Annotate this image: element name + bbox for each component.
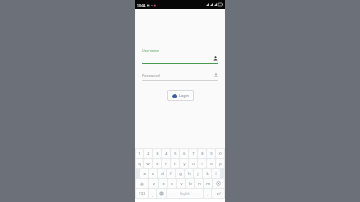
button[interactable]: m bbox=[204, 179, 212, 188]
button[interactable]: u bbox=[189, 159, 197, 168]
button[interactable]: v bbox=[177, 179, 185, 188]
staticText: g bbox=[179, 171, 182, 176]
button[interactable]: Username bbox=[142, 48, 218, 64]
button[interactable]: Backspace bbox=[213, 179, 224, 188]
staticText: h bbox=[188, 171, 191, 176]
staticText: y bbox=[183, 161, 186, 166]
staticText: 9 bbox=[210, 151, 213, 156]
staticText: ?123 bbox=[139, 192, 146, 196]
staticText: f bbox=[170, 171, 172, 176]
staticText: r bbox=[165, 161, 167, 166]
button[interactable]: n bbox=[195, 179, 203, 188]
button[interactable]: , bbox=[149, 189, 156, 198]
button[interactable]: ?123 bbox=[136, 189, 148, 198]
button[interactable]: q bbox=[136, 159, 143, 168]
staticText: z bbox=[153, 181, 155, 186]
staticText: Password bbox=[142, 73, 160, 78]
button[interactable]: h bbox=[185, 169, 193, 178]
staticText: 5 bbox=[174, 151, 177, 156]
button[interactable]: 2 bbox=[144, 149, 152, 158]
button[interactable]: o bbox=[207, 159, 215, 168]
button[interactable]: 7 bbox=[189, 149, 197, 158]
staticText: u bbox=[192, 161, 195, 166]
button[interactable]: b bbox=[186, 179, 194, 188]
button[interactable]: j bbox=[194, 169, 202, 178]
button[interactable]: Change keyboard language bbox=[157, 189, 166, 198]
button[interactable]: Login bbox=[167, 90, 194, 101]
staticText: c bbox=[171, 181, 173, 186]
staticText: j bbox=[197, 171, 199, 176]
button[interactable]: t bbox=[171, 159, 179, 168]
staticText: w bbox=[146, 161, 150, 166]
staticText: a bbox=[143, 171, 146, 176]
staticText: b bbox=[189, 181, 192, 186]
button[interactable]: c bbox=[168, 179, 176, 188]
staticText: 2 bbox=[147, 151, 150, 156]
button[interactable]: l bbox=[212, 169, 220, 178]
button[interactable]: p bbox=[216, 159, 224, 168]
staticText: . bbox=[207, 192, 208, 196]
button[interactable]: Enter bbox=[212, 189, 224, 198]
button[interactable]: 9 bbox=[207, 149, 215, 158]
staticText: Login bbox=[179, 93, 189, 98]
button[interactable]: 3 bbox=[153, 149, 161, 158]
button[interactable]: f bbox=[167, 169, 175, 178]
button[interactable]: y bbox=[180, 159, 188, 168]
button[interactable]: z bbox=[149, 179, 158, 188]
staticText: p bbox=[219, 161, 222, 166]
staticText: l bbox=[215, 171, 217, 176]
staticText: d bbox=[161, 171, 164, 176]
staticText: m bbox=[206, 181, 210, 186]
staticText: o bbox=[210, 161, 213, 166]
staticText: s bbox=[152, 171, 154, 176]
staticText: 8 bbox=[201, 151, 204, 156]
staticText: v bbox=[180, 181, 183, 186]
button[interactable]: 4 bbox=[162, 149, 170, 158]
staticText: English bbox=[180, 192, 190, 196]
button[interactable]: r bbox=[162, 159, 170, 168]
button[interactable]: 5 bbox=[171, 149, 179, 158]
staticText: q bbox=[138, 161, 141, 166]
button[interactable]: k bbox=[203, 169, 211, 178]
button[interactable]: 0 bbox=[216, 149, 224, 158]
staticText: 4 bbox=[165, 151, 168, 156]
button[interactable]: d bbox=[158, 169, 166, 178]
staticText: e bbox=[156, 161, 159, 166]
button[interactable]: g bbox=[176, 169, 184, 178]
staticText: 3 bbox=[156, 151, 159, 156]
staticText: 6 bbox=[183, 151, 186, 156]
button[interactable]: Password bbox=[142, 70, 218, 81]
staticText: 1 bbox=[138, 151, 141, 156]
staticText: i bbox=[201, 161, 203, 166]
button[interactable]: s bbox=[149, 169, 157, 178]
button[interactable]: i bbox=[198, 159, 206, 168]
button[interactable]: e bbox=[153, 159, 161, 168]
staticText: n bbox=[198, 181, 201, 186]
staticText: t bbox=[174, 161, 176, 166]
button[interactable]: 6 bbox=[180, 149, 188, 158]
button[interactable]: a bbox=[140, 169, 148, 178]
button[interactable]: Shift bbox=[136, 179, 148, 188]
button[interactable]: w bbox=[144, 159, 152, 168]
staticText: x bbox=[162, 181, 165, 186]
button[interactable]: English bbox=[167, 189, 203, 198]
button[interactable]: 1 bbox=[136, 149, 143, 158]
button[interactable]: x bbox=[159, 179, 167, 188]
staticText: 10:04 bbox=[137, 3, 146, 7]
staticText: k bbox=[206, 171, 209, 176]
staticText: Username bbox=[142, 48, 160, 53]
button[interactable]: 8 bbox=[198, 149, 206, 158]
staticText: 7 bbox=[192, 151, 195, 156]
staticText: 0 bbox=[219, 151, 222, 156]
